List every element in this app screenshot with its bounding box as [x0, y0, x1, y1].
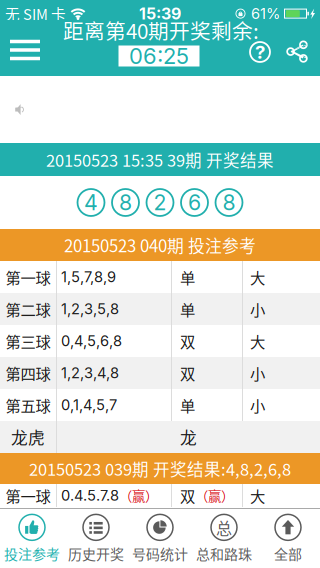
staticText: 20150523 039期 开奖结果:4,8,2,6,8	[29, 456, 291, 480]
staticText: 历史开奖	[68, 543, 124, 564]
staticText: 小	[250, 394, 265, 416]
staticText: 双	[180, 330, 195, 352]
staticText: 龙	[180, 425, 197, 449]
button[interactable]: 投注参考	[0, 508, 64, 568]
staticText: 小	[250, 298, 265, 320]
staticText: 61%	[251, 5, 280, 22]
staticText: ?	[255, 41, 265, 63]
staticText: 0,4,5,6,8	[61, 332, 122, 350]
staticText: 第五球	[5, 394, 50, 416]
staticText: 双	[180, 484, 195, 507]
staticText: 投注参考	[4, 543, 60, 564]
staticText: （赢）	[119, 486, 158, 505]
staticText: 4	[84, 190, 98, 215]
staticText: 龙虎	[11, 425, 45, 449]
button[interactable]: 号码统计	[128, 508, 192, 568]
button[interactable]: Menu	[3, 28, 47, 72]
staticText: 单	[180, 394, 195, 416]
button[interactable]: Sound	[6, 95, 34, 123]
staticText: 第三球	[5, 330, 50, 352]
staticText: 大	[250, 330, 265, 352]
staticText: 0.4.5.7.8	[61, 487, 119, 504]
staticText: 号码统计	[132, 543, 188, 564]
button[interactable]: 全部	[256, 508, 320, 568]
staticText: 15:39	[139, 4, 181, 23]
button[interactable]: 历史开奖	[64, 508, 128, 568]
button[interactable]: Share	[280, 35, 314, 69]
staticText: 8	[119, 190, 132, 215]
staticText: 06:25	[129, 43, 189, 69]
staticText: 第一球	[5, 484, 50, 507]
staticText: 20150523 040期 投注参考	[64, 233, 256, 257]
staticText: 0,1,4,5,7	[61, 396, 117, 414]
staticText: 8	[222, 190, 235, 215]
staticText: 第一球	[5, 266, 50, 288]
staticText: 第二球	[5, 298, 50, 320]
button[interactable]: Help	[243, 35, 277, 69]
staticText: 无 SIM 卡	[5, 3, 66, 24]
staticText: 第四球	[5, 362, 50, 384]
staticText: 总	[216, 516, 232, 539]
staticText: 大	[250, 484, 265, 507]
staticText: 小	[250, 362, 265, 384]
staticText: 大	[250, 266, 265, 288]
staticText: 单	[180, 298, 195, 320]
staticText: 2	[153, 190, 166, 215]
button[interactable]: 总	[192, 508, 256, 568]
staticText: 20150523 15:35 39期 开奖结果	[46, 147, 274, 171]
staticText: 双	[180, 362, 195, 384]
staticText: 6	[188, 190, 201, 215]
staticText: 总和路珠	[196, 543, 252, 564]
staticText: （赢）	[195, 486, 234, 505]
staticText: 1,2,3,5,8	[61, 300, 119, 318]
staticText: 单	[180, 266, 195, 288]
staticText: 1,2,3,4,8	[61, 364, 119, 382]
staticText: 全部	[274, 543, 302, 564]
staticText: 1,5,7,8,9	[61, 268, 116, 286]
staticText: 距离第40期开奖剩余:	[63, 15, 259, 45]
